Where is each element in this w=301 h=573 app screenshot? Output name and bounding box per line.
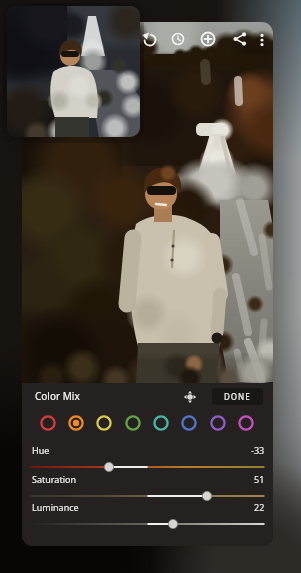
button[interactable]: DONE bbox=[212, 388, 263, 405]
button[interactable] bbox=[236, 413, 256, 433]
staticText: Hue bbox=[32, 444, 50, 456]
button[interactable] bbox=[229, 28, 251, 50]
button[interactable] bbox=[167, 28, 189, 50]
button[interactable] bbox=[22, 516, 273, 532]
staticText: 22 bbox=[254, 501, 265, 513]
button[interactable] bbox=[139, 28, 161, 50]
button[interactable] bbox=[22, 459, 273, 475]
button[interactable] bbox=[197, 28, 219, 50]
button[interactable] bbox=[38, 413, 58, 433]
staticText: Saturation bbox=[32, 473, 76, 485]
staticText: 51 bbox=[254, 473, 265, 485]
button[interactable] bbox=[179, 413, 199, 433]
button[interactable] bbox=[208, 413, 228, 433]
staticText: Color Mix bbox=[35, 389, 80, 403]
button[interactable] bbox=[180, 387, 200, 407]
staticText: -33 bbox=[251, 444, 265, 456]
button[interactable] bbox=[22, 488, 273, 504]
staticText: DONE bbox=[224, 391, 251, 402]
button[interactable] bbox=[251, 29, 273, 51]
button[interactable] bbox=[123, 413, 143, 433]
button[interactable] bbox=[151, 413, 171, 433]
button[interactable] bbox=[66, 413, 86, 433]
button[interactable] bbox=[94, 413, 114, 433]
button[interactable] bbox=[7, 6, 140, 137]
staticText: Luminance bbox=[32, 501, 79, 513]
